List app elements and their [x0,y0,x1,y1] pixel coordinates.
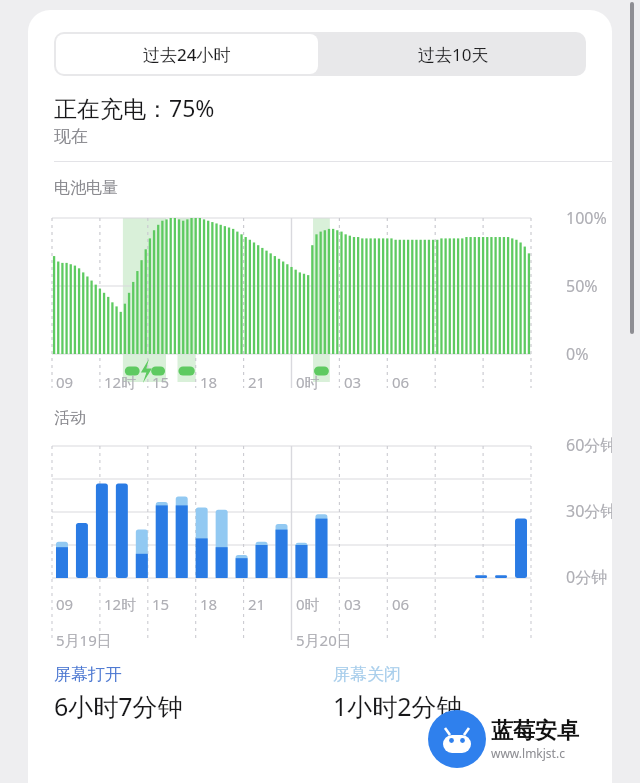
staticText: 0% [566,343,589,365]
staticText: 1小时2分钟 [333,689,462,723]
staticText: 30分钟 [566,500,612,522]
staticText: 06 [392,372,410,392]
staticText: 0分钟 [566,566,608,588]
staticText: 12时 [104,594,137,614]
staticText: 100% [566,207,607,229]
staticText: 5月20日 [296,630,352,650]
staticText: 06 [392,594,410,614]
staticText: 屏幕关闭 [333,664,401,685]
staticText: 03 [344,372,362,392]
staticText: 电池电量 [54,178,118,198]
staticText: 09 [56,372,74,392]
staticText: 0时 [296,372,320,392]
staticText: 15 [152,372,170,392]
staticText: 5月19日 [56,630,112,650]
other: Watermark logo [428,710,579,768]
staticText: 50% [566,275,598,297]
staticText: 18 [200,372,218,392]
staticText: 18 [200,594,218,614]
staticText: 09 [56,594,74,614]
staticText: 蓝莓安卓 [491,717,579,745]
staticText: 正在充电：75% [54,92,215,123]
staticText: 21 [248,372,266,392]
button[interactable]: 屏幕关闭 [333,664,612,723]
staticText: 15 [152,594,170,614]
staticText: 0时 [296,594,320,614]
staticText: 03 [344,594,362,614]
staticText: www.lmkjst.c [491,745,565,761]
button[interactable]: 过去24小时 [56,34,318,74]
staticText: 屏幕打开 [54,664,122,685]
button[interactable]: 屏幕打开 [54,664,333,723]
button[interactable]: 过去10天 [320,32,586,76]
staticText: 12时 [104,372,137,392]
staticText: 过去24小时 [143,43,231,66]
staticText: 现在 [54,126,88,147]
staticText: 活动 [54,408,86,428]
staticText: 过去10天 [418,43,489,66]
staticText: 60分钟 [566,434,612,456]
staticText: 21 [248,594,266,614]
staticText: 6小时7分钟 [54,689,183,723]
